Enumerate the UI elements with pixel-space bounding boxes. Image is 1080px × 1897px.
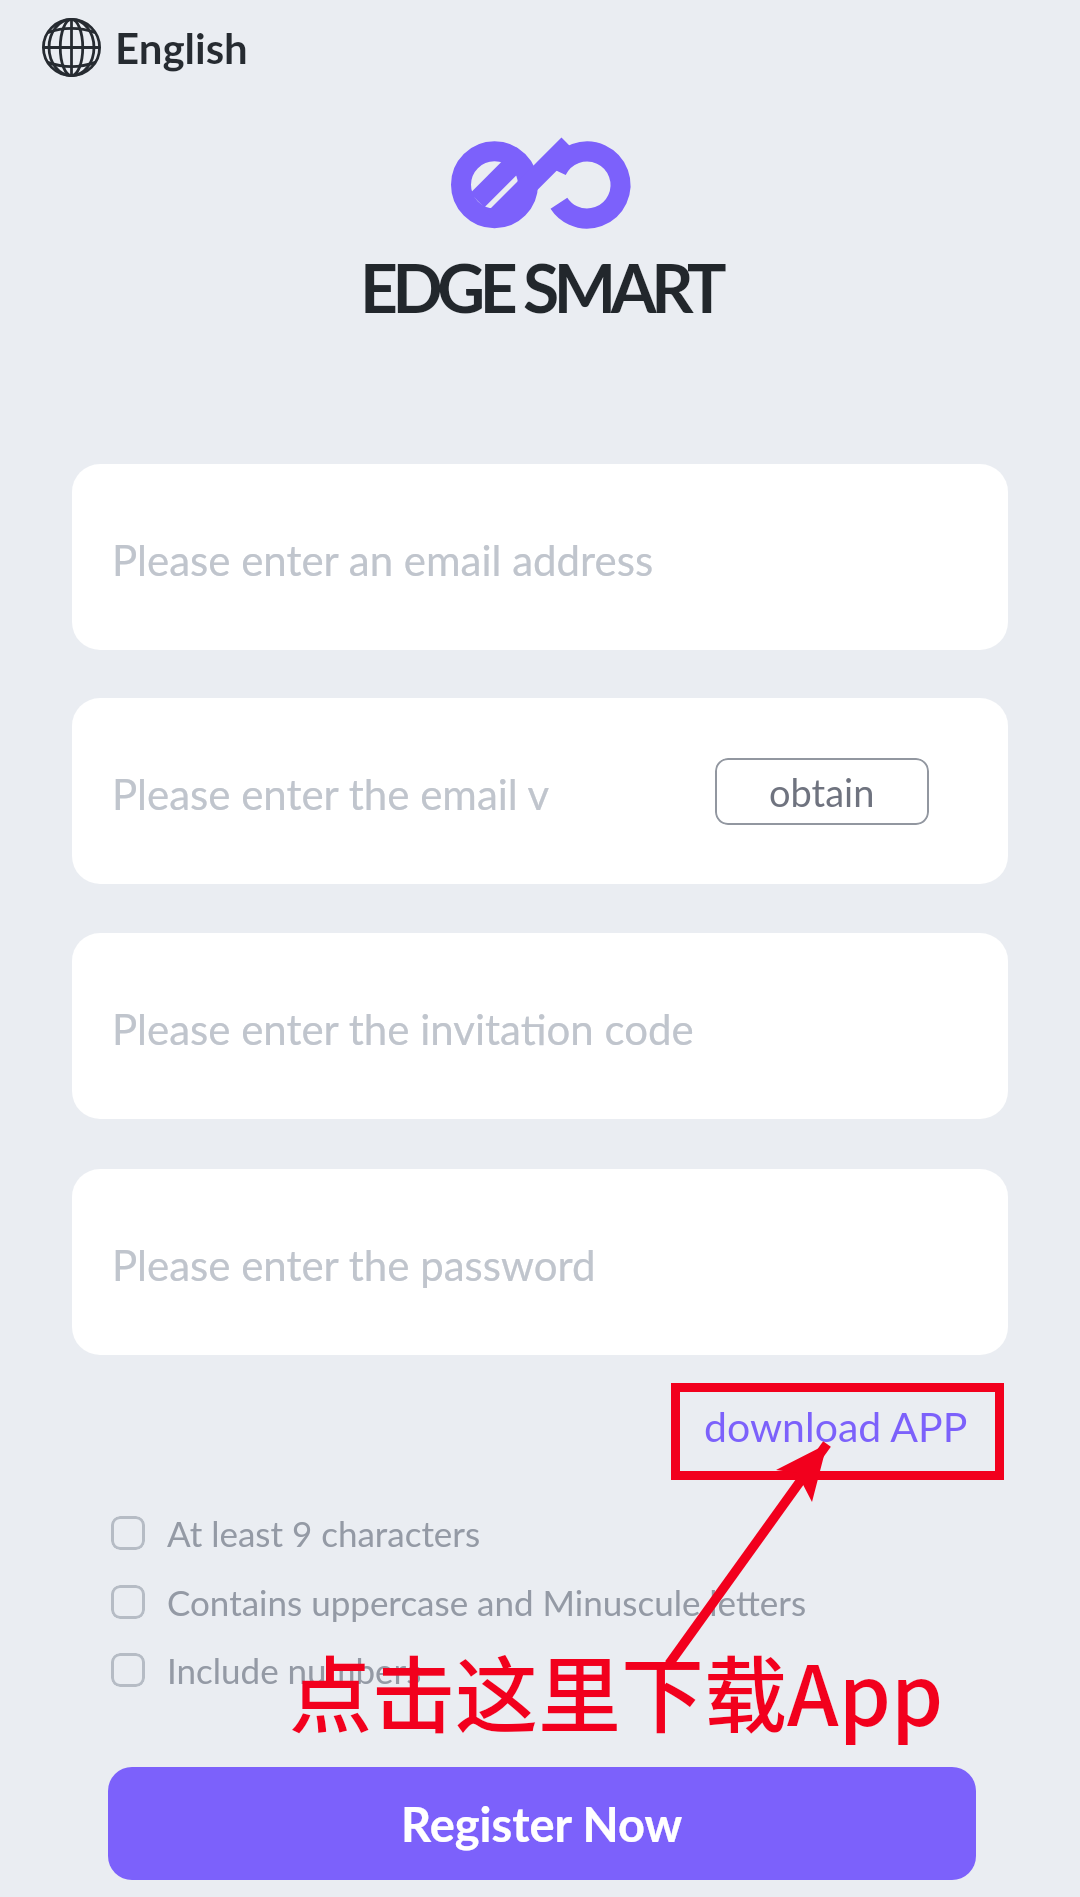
staticText: Please enter the password (112, 1240, 596, 1290)
button[interactable]: Contains uppercase and Minuscule letters (111, 1581, 807, 1623)
button[interactable]: download APP (704, 1402, 968, 1451)
staticText: Register Now (401, 1796, 683, 1852)
staticText: Please enter the invitation code (112, 1004, 694, 1054)
button[interactable]: Please enter the email v (72, 698, 1008, 884)
staticText: At least 9 characters (167, 1512, 481, 1554)
staticText: Contains uppercase and Minuscule letters (167, 1581, 807, 1623)
staticText: 点击这里下载App (289, 1630, 944, 1750)
button[interactable]: Register Now (108, 1767, 976, 1880)
button[interactable]: Please enter the invitation code (72, 933, 1008, 1119)
button[interactable]: Include numbers (111, 1649, 422, 1691)
button[interactable]: Please enter the password (72, 1169, 1008, 1355)
button[interactable]: At least 9 characters (111, 1512, 481, 1554)
other: Language (42, 18, 101, 77)
staticText: obtain (769, 769, 875, 815)
staticText: Please enter an email address (112, 535, 654, 585)
button[interactable]: Please enter an email address (72, 464, 1008, 650)
staticText: EDGE SMART (360, 248, 722, 327)
staticText: English (115, 23, 248, 73)
staticText: Include numbers (167, 1649, 422, 1691)
button[interactable]: Language (42, 18, 248, 77)
button[interactable]: obtain (715, 758, 929, 825)
staticText: Please enter the email v (112, 769, 550, 819)
